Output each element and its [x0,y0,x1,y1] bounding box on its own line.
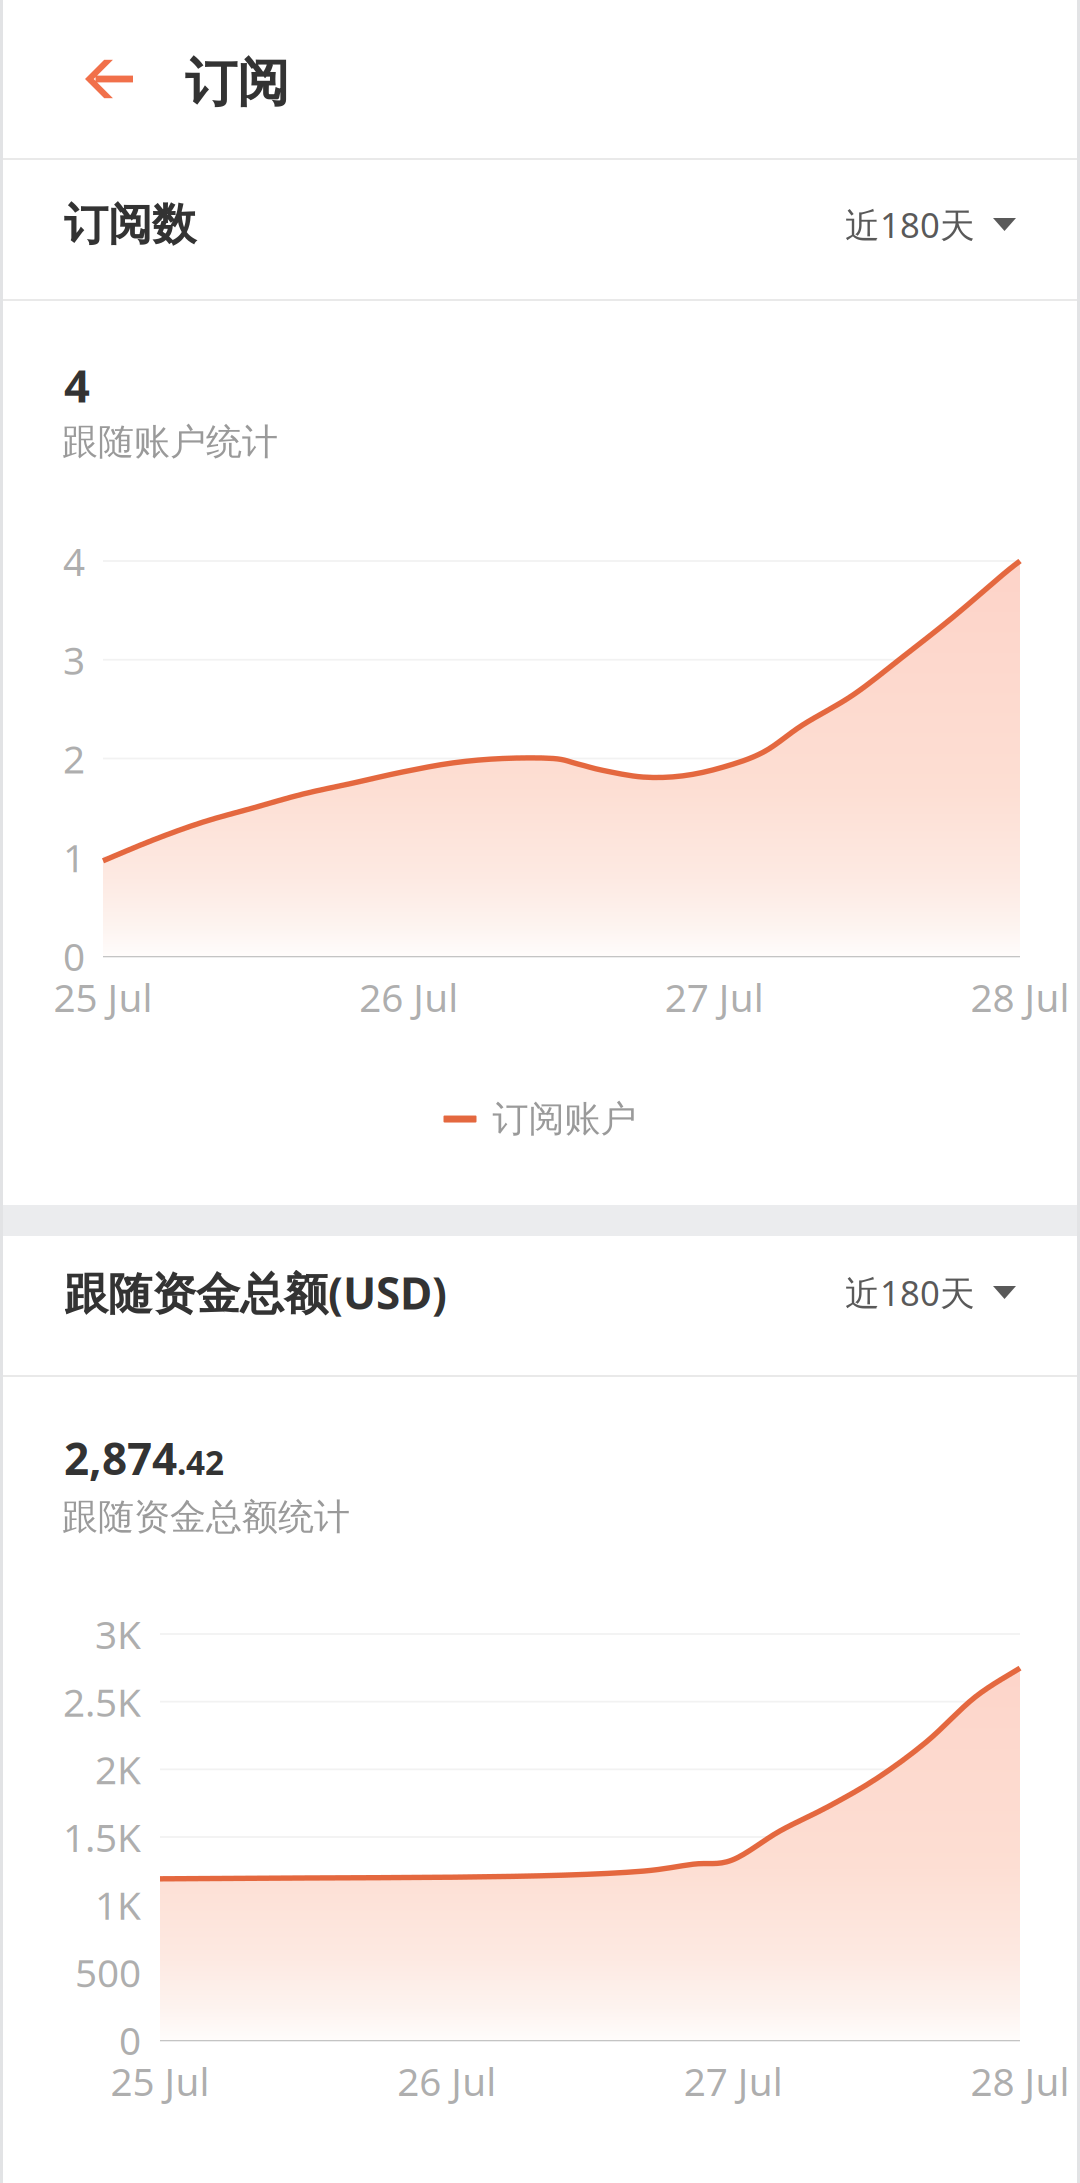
button[interactable]: 近180天 [845,1269,1016,1315]
staticText: 订阅数 [64,197,196,251]
staticText: 26 Jul [359,971,458,1023]
staticText: 2,874 [64,1429,177,1487]
staticText: 0 [119,2014,141,2066]
staticText: 订阅 [185,51,289,115]
staticText: 25 Jul [53,971,152,1023]
staticText: 2K [95,1744,141,1795]
staticText: 订阅账户 [492,1097,636,1141]
staticText: 27 Jul [684,2055,783,2107]
staticText: 0 [63,930,85,982]
staticText: 1K [95,1879,141,1930]
staticText: 跟随资金总额(USD) [64,1263,447,1322]
staticText: 近180天 [845,201,975,247]
staticText: 近180天 [845,1269,975,1315]
staticText: 3 [63,634,85,685]
button[interactable]: 近180天 [845,201,1016,247]
staticText: 26 Jul [397,2055,496,2107]
staticText: 2 [63,733,85,784]
staticText: 3K [95,1608,141,1660]
staticText: 跟随账户统计 [62,420,278,464]
staticText: 1.5K [63,1811,141,1863]
staticText: 500 [75,1947,141,1998]
staticText: 2.5K [63,1676,141,1727]
staticText: 跟随资金总额统计 [62,1495,350,1539]
staticText: 1 [63,832,85,883]
staticText: 28 Jul [970,2055,1069,2107]
staticText: .42 [177,1440,224,1484]
staticText: 4 [63,535,85,587]
staticText: 27 Jul [665,971,764,1023]
staticText: 28 Jul [970,971,1069,1023]
staticText: 4 [64,355,90,415]
button[interactable]: Back [55,21,163,137]
staticText: 25 Jul [110,2055,209,2107]
